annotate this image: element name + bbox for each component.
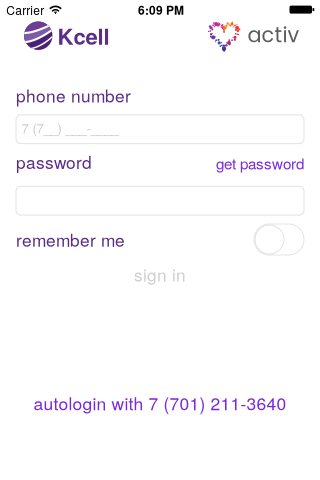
staticText: activ <box>247 20 299 49</box>
button[interactable]: remember me <box>254 224 304 255</box>
button[interactable]: sign in <box>134 262 186 286</box>
button[interactable] <box>16 186 304 215</box>
staticText: phone number <box>16 82 131 107</box>
staticText: Kcell <box>57 20 109 51</box>
staticText: Carrier <box>6 1 44 18</box>
button[interactable]: autologin with 7 (701) 211-3640 <box>33 390 286 415</box>
staticText: sign in <box>134 262 186 286</box>
staticText: get password <box>216 152 304 174</box>
button[interactable]: 7 (7__) ___-____ <box>16 115 304 144</box>
button[interactable]: get password <box>216 152 304 174</box>
staticText: 6:09 PM <box>138 1 184 18</box>
staticText: password <box>16 149 92 174</box>
staticText: 7 (7__) ___-____ <box>21 118 118 137</box>
staticText: autologin with 7 (701) 211-3640 <box>33 390 286 415</box>
staticText: remember me <box>16 227 125 252</box>
